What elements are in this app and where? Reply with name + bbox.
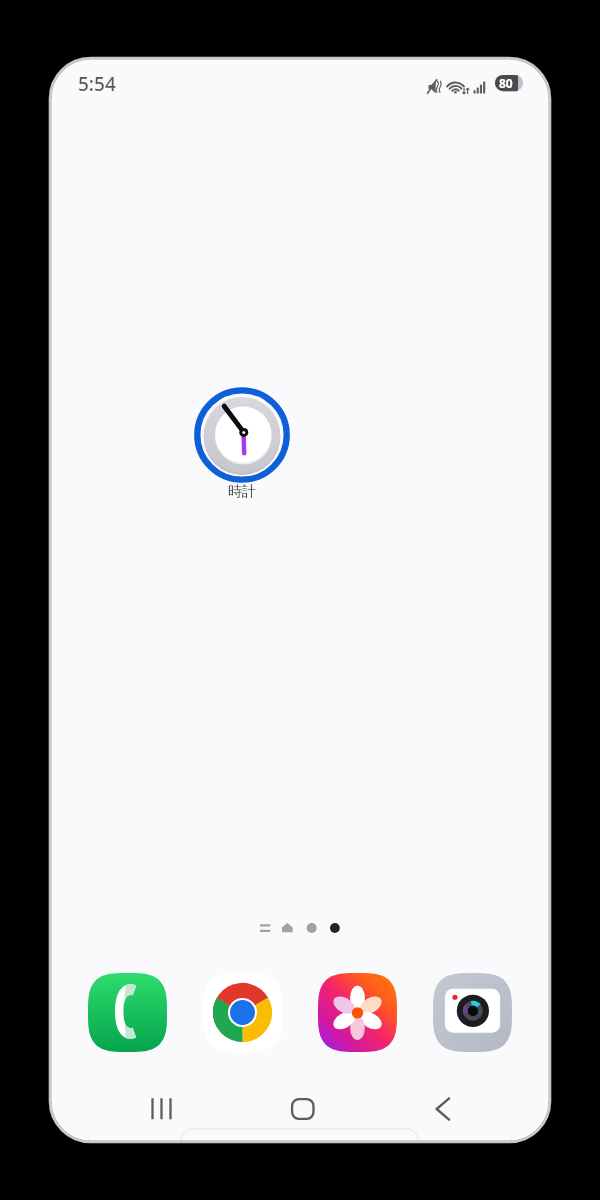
button[interactable]: Phone <box>81 966 173 1058</box>
button[interactable]: Gallery <box>311 966 403 1058</box>
button[interactable]: Home screen pages <box>257 918 341 938</box>
staticText: 時計 <box>228 483 256 501</box>
staticText: 5:54 <box>78 71 116 97</box>
button[interactable]: Chrome <box>196 966 288 1058</box>
staticText: 80 <box>499 75 513 91</box>
button[interactable]: 時計 <box>194 387 290 507</box>
button[interactable]: Recents <box>131 1084 191 1133</box>
button[interactable]: Back <box>411 1084 471 1133</box>
button[interactable]: Home <box>272 1084 332 1133</box>
button[interactable]: Camera <box>426 966 518 1058</box>
